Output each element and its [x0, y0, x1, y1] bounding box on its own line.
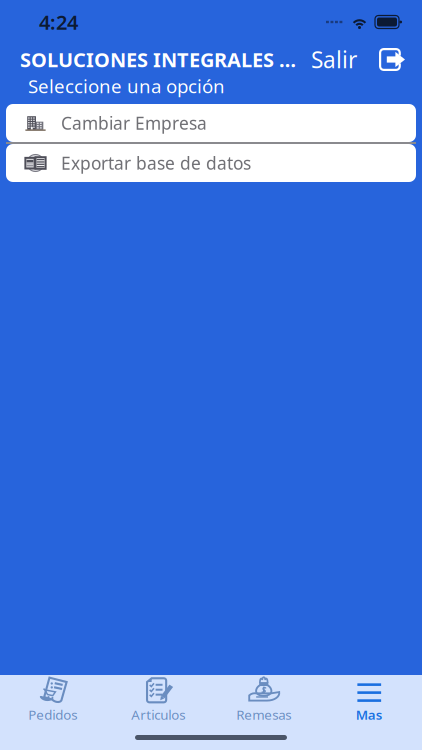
button[interactable]: Articulos [105, 673, 211, 723]
staticText: Pedidos [28, 706, 77, 723]
button[interactable]: Exportar base de datos [6, 144, 416, 182]
staticText: 4:24 [39, 9, 78, 35]
button[interactable]: Pedidos [0, 673, 105, 723]
button[interactable]: Remesas [211, 673, 316, 723]
button[interactable]: Salir [307, 40, 361, 78]
button[interactable]: Cambiar Empresa [6, 104, 416, 142]
staticText: SOLUCIONES INTEGRALES INN... [20, 46, 303, 73]
staticText: Mas [356, 706, 383, 723]
button[interactable]: Salir [361, 44, 405, 75]
staticText: Exportar base de datos [61, 151, 251, 174]
staticText: Salir [311, 44, 357, 74]
staticText: Seleccione una opción [28, 74, 225, 98]
staticText: Cambiar Empresa [61, 111, 207, 134]
staticText: Remesas [236, 706, 291, 723]
button[interactable]: Mas [316, 673, 422, 723]
staticText: Articulos [131, 706, 185, 723]
